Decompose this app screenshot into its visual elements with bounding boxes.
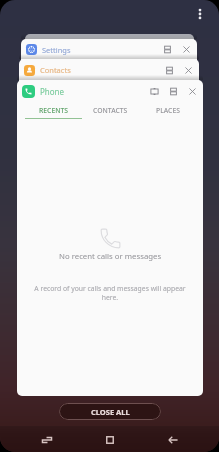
- button[interactable]: Contacts: [19, 59, 199, 81]
- button[interactable]: Split screen view: [164, 82, 183, 101]
- button[interactable]: Settings: [21, 39, 197, 60]
- staticText: RECENTS: [39, 106, 69, 115]
- button[interactable]: Pop-up view: [145, 82, 164, 101]
- staticText: CONTACTS: [93, 106, 128, 115]
- staticText: Phone: [40, 86, 65, 97]
- button[interactable]: Phone: [17, 80, 203, 102]
- button[interactable]: [25, 34, 194, 44]
- staticText: Contacts: [40, 65, 71, 75]
- button[interactable]: CONTACTS: [82, 102, 139, 119]
- button[interactable]: Close: [177, 40, 196, 59]
- staticText: A record of your calls and messages will…: [31, 284, 189, 302]
- staticText: No recent calls or messages: [59, 251, 162, 262]
- button[interactable]: RECENTS: [25, 102, 82, 119]
- button[interactable]: Close: [179, 61, 198, 80]
- staticText: PLACES: [156, 106, 180, 115]
- button[interactable]: Recents: [16, 427, 78, 452]
- button[interactable]: PLACES: [139, 102, 196, 119]
- button[interactable]: Split screen view: [160, 61, 179, 80]
- button[interactable]: CLOSE ALL: [59, 403, 161, 420]
- button[interactable]: Close: [183, 82, 202, 101]
- button[interactable]: More options: [189, 3, 211, 25]
- staticText: Settings: [42, 45, 71, 55]
- button[interactable]: Home: [78, 427, 141, 452]
- button[interactable]: Back: [141, 427, 204, 452]
- staticText: CLOSE ALL: [91, 407, 130, 417]
- button[interactable]: Split screen view: [158, 40, 177, 59]
